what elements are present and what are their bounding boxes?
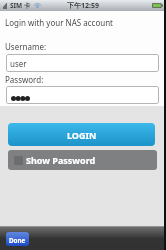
staticText: Show Password	[26, 154, 96, 166]
staticText: LOGIN	[67, 129, 97, 141]
staticText: SIM 卡	[10, 1, 31, 10]
staticText: Username:	[5, 41, 47, 52]
staticText: 下午12:59	[67, 1, 99, 11]
staticText: user	[10, 58, 27, 69]
button[interactable]: Done	[6, 232, 29, 246]
button[interactable]	[6, 86, 159, 104]
staticText: Password:	[5, 74, 44, 85]
staticText: Login with your NAS account	[5, 17, 113, 28]
button[interactable]: user	[6, 54, 159, 72]
staticText: Done	[9, 236, 26, 244]
button[interactable]: Show Password	[8, 150, 157, 170]
button[interactable]: LOGIN	[8, 123, 155, 146]
